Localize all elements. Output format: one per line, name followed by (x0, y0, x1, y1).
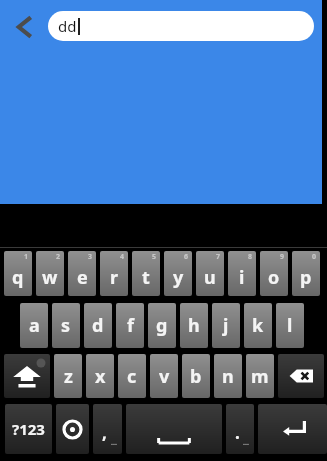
staticText: u (204, 265, 216, 290)
staticText: x (95, 364, 106, 389)
button[interactable]: c (118, 354, 146, 398)
button[interactable]: v (150, 354, 178, 398)
button[interactable]: l (276, 303, 304, 348)
staticText: 3 (88, 252, 93, 262)
button[interactable]: g (148, 303, 176, 348)
button[interactable]: x (86, 354, 114, 398)
staticText: 1 (24, 252, 29, 262)
staticText: i (239, 265, 245, 290)
staticText: r (110, 265, 119, 290)
staticText: m (251, 364, 269, 389)
staticText: 9 (280, 252, 285, 262)
staticText: n (222, 364, 234, 389)
button[interactable]: 3 (68, 251, 96, 296)
staticText: 7 (216, 252, 221, 262)
staticText: t (142, 265, 150, 290)
staticText: 2 (56, 252, 61, 262)
button[interactable]: 4 (100, 251, 128, 296)
button[interactable]: 7 (196, 251, 224, 296)
button[interactable]: 6 (164, 251, 192, 296)
button[interactable]: Change input method (56, 404, 89, 454)
button[interactable]: h (180, 303, 208, 348)
button[interactable]: Backspace (278, 354, 324, 398)
button[interactable]: Shift (4, 354, 50, 398)
staticText: 8 (248, 252, 253, 262)
staticText: a (29, 313, 40, 338)
button[interactable]: Space (126, 404, 222, 454)
staticText: 4 (120, 252, 125, 262)
staticText: f (127, 313, 134, 338)
button[interactable]: . (226, 404, 254, 454)
staticText: v (159, 364, 170, 389)
staticText: k (252, 313, 264, 338)
staticText: l (287, 313, 293, 338)
button[interactable]: 1 (4, 251, 32, 296)
staticText: w (42, 265, 58, 290)
button[interactable]: s (52, 303, 80, 348)
staticText: z (64, 364, 73, 389)
button[interactable]: Back (6, 8, 44, 46)
button[interactable]: , (93, 404, 122, 454)
staticText: p (300, 265, 312, 290)
button[interactable]: a (20, 303, 48, 348)
staticText: q (12, 265, 24, 290)
staticText: j (223, 313, 229, 338)
button[interactable]: j (212, 303, 240, 348)
button[interactable]: 8 (228, 251, 256, 296)
button[interactable]: b (182, 354, 210, 398)
button[interactable]: m (246, 354, 274, 398)
button[interactable]: Enter (258, 404, 327, 454)
staticText: ... (111, 438, 117, 448)
staticText: h (188, 313, 200, 338)
staticText: ?123 (12, 419, 45, 439)
staticText: c (127, 364, 137, 389)
staticText: 6 (184, 252, 189, 262)
staticText: g (156, 313, 168, 338)
staticText: 0 (312, 252, 317, 262)
button[interactable]: ?123 (5, 404, 52, 454)
staticText: ... (243, 438, 249, 448)
staticText: e (77, 265, 88, 290)
staticText: dd (58, 16, 77, 36)
button[interactable]: f (116, 303, 144, 348)
staticText: s (61, 313, 71, 338)
staticText: d (92, 313, 104, 338)
staticText: . (235, 421, 240, 444)
staticText: 5 (152, 252, 157, 262)
button[interactable]: k (244, 303, 272, 348)
staticText: b (190, 364, 202, 389)
button[interactable]: 0 (292, 251, 320, 296)
button[interactable]: 9 (260, 251, 288, 296)
staticText: o (268, 265, 280, 290)
button[interactable]: 5 (132, 251, 160, 296)
button[interactable]: z (54, 354, 82, 398)
button[interactable]: dd (48, 11, 314, 41)
button[interactable]: d (84, 303, 112, 348)
staticText: , (102, 421, 107, 444)
button[interactable]: n (214, 354, 242, 398)
button[interactable]: 2 (36, 251, 64, 296)
staticText: y (173, 265, 184, 290)
